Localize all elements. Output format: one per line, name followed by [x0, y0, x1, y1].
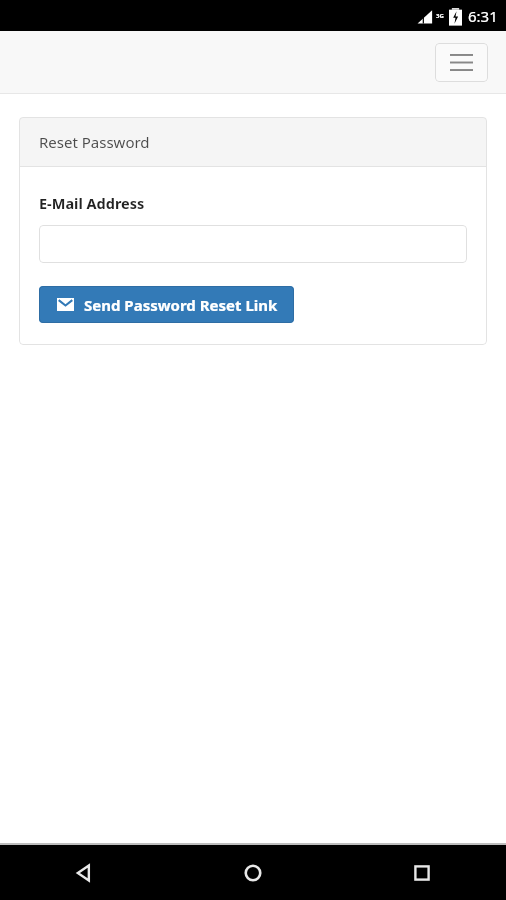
button[interactable]: Open navigation menu	[435, 43, 488, 82]
staticText: Send Password Reset Link	[84, 295, 278, 315]
staticText: 6:31	[468, 6, 498, 26]
button[interactable]: Home	[168, 845, 337, 900]
button[interactable]: Recent apps	[337, 845, 506, 900]
button[interactable]: E-Mail Address input	[39, 225, 467, 263]
staticText: Reset Password	[39, 132, 150, 152]
button[interactable]: Back	[0, 845, 168, 900]
staticText: 3G	[436, 12, 444, 20]
button[interactable]: Send Password Reset Link	[39, 286, 294, 323]
staticText: E-Mail Address	[39, 193, 145, 213]
